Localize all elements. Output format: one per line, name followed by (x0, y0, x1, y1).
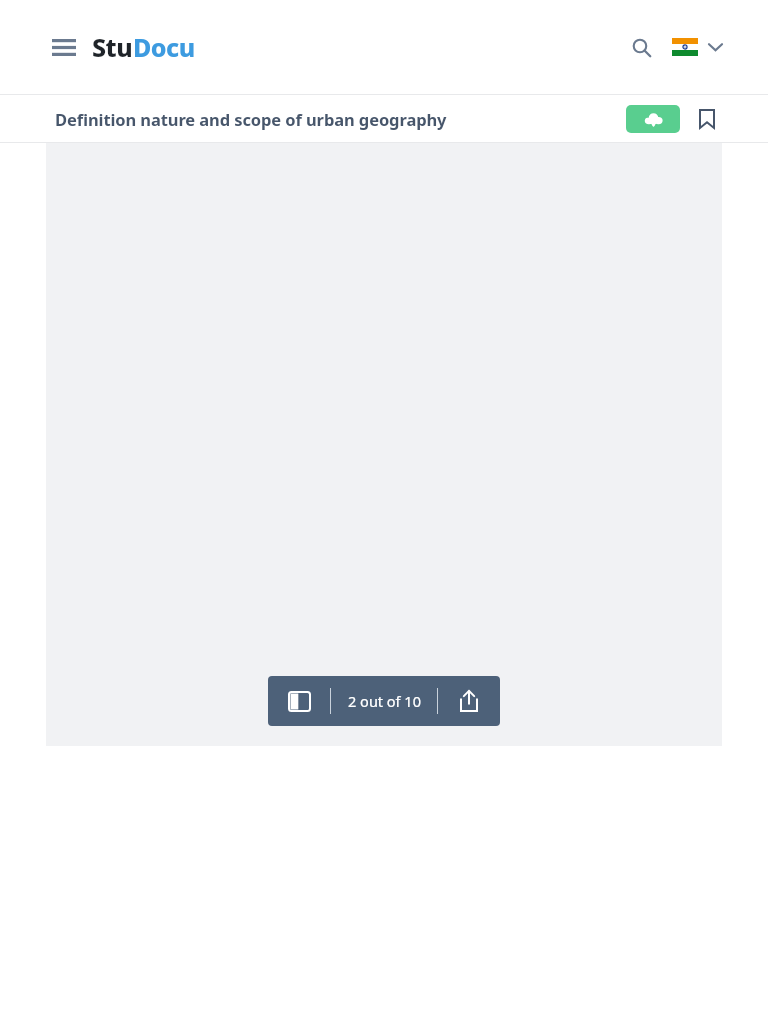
staticText: Stu (92, 30, 133, 64)
button[interactable]: Download (626, 105, 680, 133)
button[interactable]: Menu (46, 29, 82, 65)
staticText: Definition nature and scope of urban geo… (55, 108, 447, 130)
button[interactable]: 2 out of 10 (331, 676, 437, 726)
button[interactable]: Stu (92, 30, 195, 64)
button[interactable]: Select language (672, 38, 722, 56)
button[interactable]: Toggle sidebar (268, 676, 330, 726)
button[interactable]: Share (438, 676, 500, 726)
button[interactable]: Bookmark (692, 104, 722, 134)
staticText: Docu (133, 30, 195, 64)
button[interactable]: Search (624, 30, 658, 64)
staticText: 2 out of 10 (348, 691, 421, 711)
